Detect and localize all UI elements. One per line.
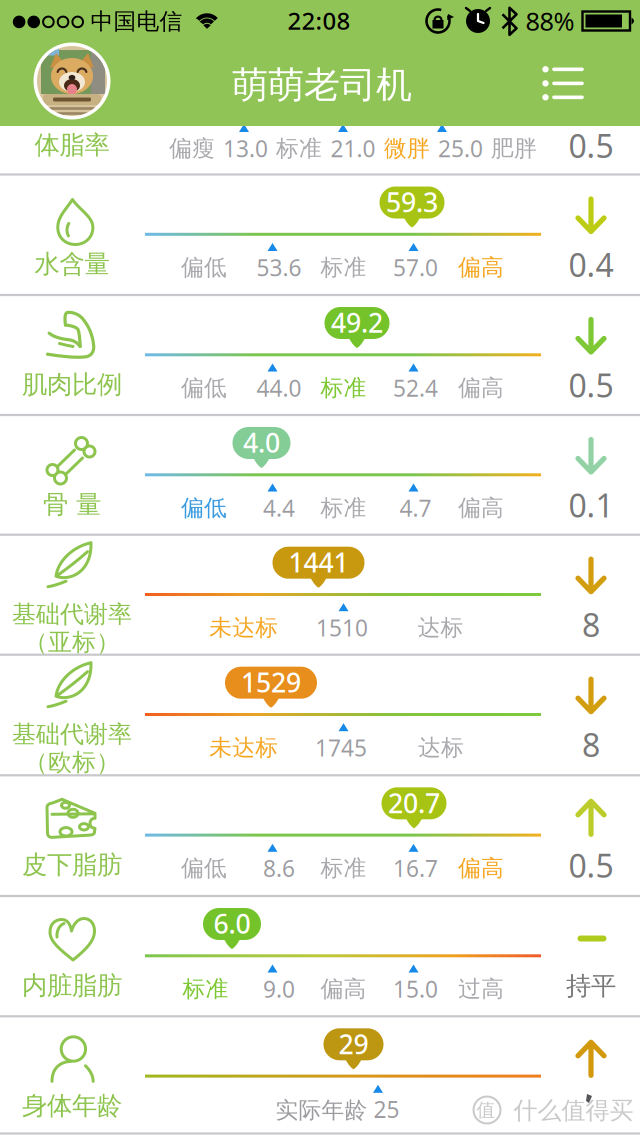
staticText: 实际年龄 25 — [275, 1094, 399, 1124]
staticText: （欧标） — [24, 747, 120, 777]
staticText: 9.0 — [263, 974, 295, 1004]
staticText: 标准 — [183, 975, 229, 1003]
staticText: 未达标 — [209, 614, 278, 642]
staticText: 88% — [525, 4, 574, 38]
staticText: 未达标 — [209, 734, 278, 762]
button[interactable]: 历史记录列表 — [538, 57, 594, 109]
staticText: 偏高 — [458, 494, 504, 522]
staticText: 8.6 — [263, 853, 295, 883]
staticText: 内脏脂肪 — [22, 970, 122, 1001]
staticText: 44.0 — [256, 373, 301, 403]
staticText: 基础代谢率 — [12, 719, 132, 749]
staticText: 偏低 — [181, 494, 227, 522]
staticText: 57.0 — [393, 252, 438, 282]
staticText: 16.7 — [393, 853, 438, 883]
staticText: 偏低 — [181, 374, 227, 402]
staticText: 标准 — [320, 854, 366, 882]
staticText: 偏低 — [181, 254, 227, 281]
button[interactable]: 内脏脂肪 — [0, 896, 640, 1016]
staticText: 偏高 — [458, 254, 504, 281]
button[interactable]: 基础代谢率 — [0, 535, 640, 655]
staticText: 骨 量 — [43, 489, 101, 520]
staticText: 体脂率 — [34, 129, 109, 160]
staticText: 1510 — [316, 613, 368, 643]
button[interactable]: 身体年龄 — [0, 1016, 640, 1136]
staticText: 标准 — [320, 374, 366, 402]
staticText: 21.0 — [330, 133, 375, 163]
staticText: 52.4 — [393, 373, 438, 403]
staticText: 53.6 — [256, 252, 301, 282]
staticText: 达标 — [418, 734, 464, 762]
staticText: 偏低 — [181, 854, 227, 882]
staticText: 中国电信 — [90, 8, 182, 35]
staticText: 偏高 — [458, 854, 504, 882]
staticText: 49.2 — [331, 305, 383, 340]
button[interactable]: 用户头像 — [33, 42, 110, 119]
staticText: 1745 — [315, 733, 367, 763]
button[interactable]: 基础代谢率 — [0, 655, 640, 775]
staticText: 水含量 — [34, 248, 109, 279]
staticText: 什么值得买 — [513, 1096, 633, 1125]
staticText: 22:08 — [287, 5, 350, 36]
staticText: 基础代谢率 — [12, 599, 132, 629]
staticText: 0.4 — [568, 243, 613, 286]
staticText: 值 — [476, 1098, 495, 1121]
staticText: 肥胖 — [491, 135, 537, 162]
staticText: 持平 — [566, 970, 616, 1001]
staticText: 59.3 — [386, 184, 438, 220]
staticText: 0.5 — [568, 124, 613, 167]
staticText: 8 — [582, 603, 600, 646]
staticText: 标准 — [320, 254, 366, 281]
button[interactable]: 水含量 — [0, 174, 640, 295]
staticText: 4.4 — [263, 493, 295, 523]
staticText: 达标 — [418, 614, 464, 642]
staticText: 25.0 — [438, 133, 483, 163]
staticText: 标准 — [276, 135, 322, 162]
staticText: 4.0 — [243, 425, 280, 460]
staticText: 0.5 — [568, 844, 613, 887]
staticText: 微胖 — [384, 135, 430, 162]
staticText: 8 — [582, 723, 600, 766]
staticText: 0.1 — [568, 484, 613, 526]
staticText: （亚标） — [24, 627, 120, 657]
staticText: 身体年龄 — [22, 1090, 122, 1121]
staticText: 15.0 — [393, 974, 438, 1004]
staticText: 1441 — [288, 544, 348, 580]
button[interactable]: 肌肉比例 — [0, 295, 640, 415]
button[interactable]: 体脂率 — [0, 55, 640, 176]
staticText: 0.5 — [568, 364, 613, 406]
staticText: 萌萌老司机 — [232, 63, 412, 107]
staticText: 4.7 — [400, 493, 432, 523]
staticText: 标准 — [320, 494, 366, 522]
staticText: 29 — [338, 1026, 368, 1061]
staticText: 肌肉比例 — [22, 369, 122, 400]
staticText: 偏瘦 — [169, 135, 215, 162]
staticText: 20.7 — [388, 785, 440, 820]
button[interactable]: 皮下脂肪 — [0, 775, 640, 896]
staticText: 13.0 — [223, 133, 268, 163]
button[interactable]: 骨 量 — [0, 415, 640, 535]
staticText: 偏高 — [320, 975, 366, 1003]
staticText: 皮下脂肪 — [22, 849, 122, 880]
staticText: 6.0 — [213, 906, 250, 941]
staticText: 过高 — [458, 975, 504, 1003]
staticText: 偏高 — [458, 374, 504, 402]
staticText: 1529 — [241, 664, 301, 700]
